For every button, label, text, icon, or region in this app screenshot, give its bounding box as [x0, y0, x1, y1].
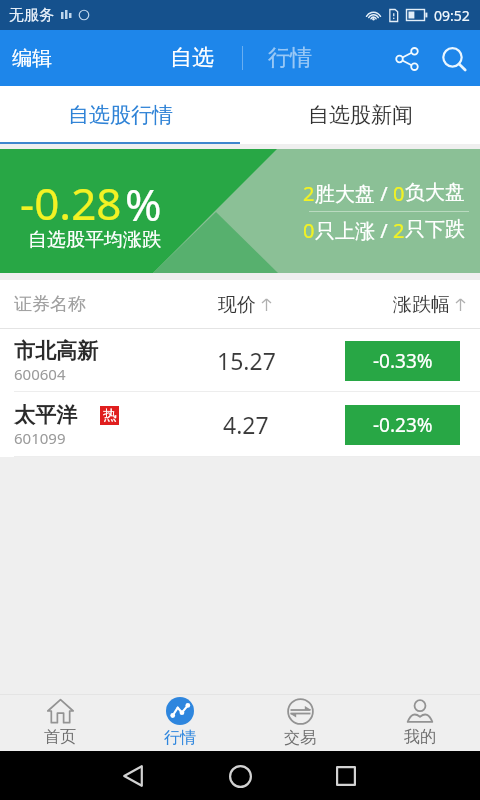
button[interactable]: Search [437, 43, 473, 79]
staticText: -0.28 [20, 173, 122, 233]
staticText: 09:52 [434, 6, 470, 25]
staticText: 4.27 [223, 409, 269, 440]
button[interactable]: 行情 [259, 36, 321, 80]
staticText: 无服务 [9, 6, 54, 25]
staticText: 市北高新 [14, 338, 98, 364]
staticText: 负大盘 [405, 180, 465, 205]
staticText: 涨跌幅 [393, 293, 450, 317]
staticText: 现价 [218, 293, 256, 317]
button[interactable]: Share [389, 41, 425, 77]
staticText: 自选 [170, 44, 214, 72]
button[interactable]: 首页 [0, 694, 120, 751]
button[interactable]: 编辑 [4, 38, 60, 79]
staticText: 自选股平均涨跌 [28, 228, 161, 252]
button[interactable]: 自选 [161, 36, 223, 80]
button[interactable]: Back [111, 754, 155, 798]
button[interactable]: 太平洋 [0, 392, 480, 457]
staticText: 行情 [164, 728, 196, 748]
staticText: 600604 [14, 364, 66, 384]
staticText: 只上涨 / [315, 217, 393, 244]
staticText: % [125, 174, 162, 234]
staticText: -0.23% [373, 412, 433, 438]
staticText: 交易 [284, 728, 316, 748]
button[interactable]: 自选股行情 [0, 86, 240, 144]
staticText: 0 [303, 217, 315, 244]
staticText: 热 [103, 407, 117, 425]
staticText: 2 [393, 217, 405, 244]
button[interactable]: Recents [324, 754, 368, 798]
staticText: 自选股行情 [68, 102, 173, 128]
staticText: 胜大盘 / [315, 180, 393, 207]
staticText: 行情 [268, 44, 312, 72]
button[interactable]: 市北高新 [0, 329, 480, 392]
staticText: 我的 [404, 727, 436, 747]
staticText: 编辑 [12, 46, 52, 71]
staticText: 2 [303, 180, 315, 207]
staticText: 0 [393, 180, 405, 207]
button[interactable]: Home [218, 754, 262, 798]
staticText: 只下跌 [405, 217, 465, 242]
staticText: 15.27 [217, 345, 276, 376]
button[interactable]: 我的 [360, 694, 480, 751]
button[interactable]: 自选股新闻 [240, 86, 480, 144]
button[interactable]: 交易 [240, 694, 360, 751]
staticText: 首页 [44, 727, 76, 747]
staticText: -0.33% [373, 348, 433, 374]
staticText: 证券名称 [14, 293, 86, 316]
button[interactable]: 行情 [120, 694, 240, 751]
staticText: 自选股新闻 [308, 102, 413, 128]
staticText: 太平洋 [14, 402, 77, 428]
staticText: 601099 [14, 428, 66, 448]
